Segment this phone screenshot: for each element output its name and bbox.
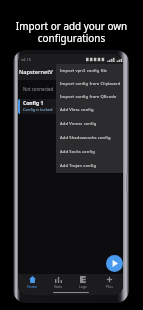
button[interactable]: Logs (72, 276, 94, 289)
button[interactable]: Add Vless config (56, 103, 123, 117)
button[interactable]: Stats (47, 276, 69, 289)
button[interactable]: Add Shadowsocks config (56, 131, 123, 145)
button[interactable]: Add Trojan config (56, 159, 123, 173)
button[interactable]: Import config from QRcode (56, 90, 123, 103)
button[interactable]: Import config from Clipboard (56, 77, 123, 90)
staticText: Home (27, 284, 37, 289)
staticText: Not connected (23, 86, 54, 92)
staticText: Logs (79, 284, 87, 289)
staticText: Add Vless config (60, 107, 94, 113)
staticText: Add Vmess config (60, 121, 97, 127)
staticText: Plus (106, 284, 113, 289)
button[interactable]: Home (21, 276, 43, 289)
staticText: Add Shadowsocks config (60, 135, 111, 141)
staticText: Config is locked (23, 107, 53, 112)
button[interactable]: Connect (106, 255, 123, 272)
staticText: v4.16 (21, 57, 31, 62)
button[interactable]: Add Vmess config (56, 117, 123, 131)
staticText: Import config from Clipboard (60, 81, 121, 87)
staticText: NapsternetV (19, 68, 53, 76)
staticText: Import vpn3 config file (60, 68, 108, 74)
staticText: Import or add your own configurations (0, 19, 143, 44)
button[interactable]: Plus (98, 276, 120, 289)
staticText: Add Socks config (60, 149, 95, 155)
button[interactable]: Config 1 (18, 99, 123, 114)
staticText: Stats (54, 284, 63, 289)
staticText: Add Trojan config (60, 163, 97, 169)
button[interactable]: Import vpn3 config file (56, 64, 123, 77)
staticText: Config 1 (23, 100, 44, 107)
staticText: Import config from QRcode (60, 94, 117, 100)
button[interactable]: Add Socks config (56, 145, 123, 159)
